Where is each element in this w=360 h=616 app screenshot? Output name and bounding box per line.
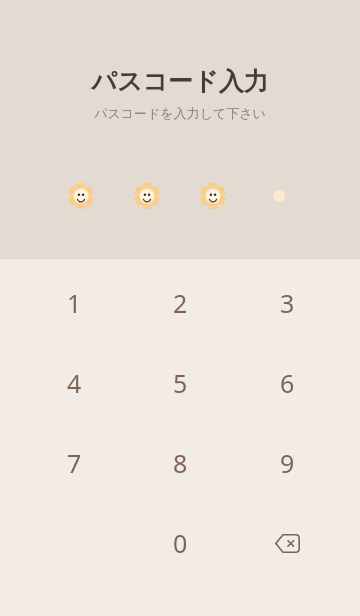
staticText: 1 xyxy=(67,286,82,320)
button[interactable]: 9 xyxy=(234,423,341,503)
button[interactable]: 6 xyxy=(234,343,341,423)
button[interactable]: 7 xyxy=(21,423,127,503)
button[interactable]: 1 xyxy=(21,263,127,343)
staticText: 3 xyxy=(280,286,295,320)
button[interactable]: 3 xyxy=(234,263,341,343)
button[interactable]: 8 xyxy=(127,423,234,503)
staticText: 9 xyxy=(280,446,295,480)
button[interactable]: 5 xyxy=(127,343,234,423)
staticText: 6 xyxy=(280,366,295,400)
staticText: 7 xyxy=(67,446,82,480)
staticText: 8 xyxy=(173,446,188,480)
button[interactable]: 4 xyxy=(21,343,127,423)
staticText: 4 xyxy=(67,366,82,400)
staticText: パスコード入力 xyxy=(91,66,269,97)
staticText: 2 xyxy=(173,286,188,320)
staticText: 5 xyxy=(173,366,188,400)
other: Delete xyxy=(271,526,305,560)
staticText: パスコードを入力して下さい xyxy=(94,105,266,121)
button[interactable]: 0 xyxy=(127,503,234,583)
button[interactable]: 2 xyxy=(127,263,234,343)
staticText: 0 xyxy=(173,526,188,560)
button[interactable]: Delete xyxy=(234,503,341,583)
